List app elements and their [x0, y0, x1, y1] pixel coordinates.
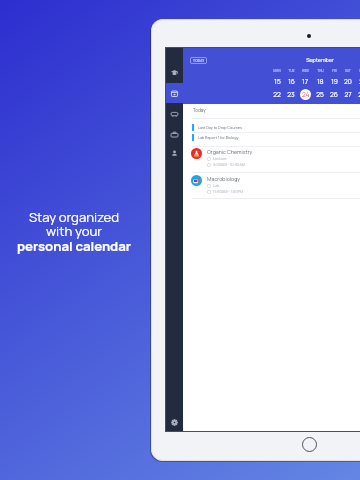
staticText: Macrobiology: [207, 175, 241, 182]
staticText: Lab Report 1 for Biology: [198, 135, 239, 140]
button[interactable]: Macrobiology: [166, 175, 360, 197]
button[interactable]: Messages: [166, 104, 183, 124]
button[interactable]: Courses: [166, 62, 183, 82]
staticText: 22: [273, 90, 281, 99]
staticText: WED: [302, 69, 309, 73]
staticText: SUN: [359, 69, 360, 73]
button[interactable]: Profile: [166, 143, 183, 163]
staticText: 17: [302, 77, 308, 86]
staticText: 27: [344, 90, 352, 99]
staticText: 20: [344, 77, 352, 86]
staticText: Organic Chemistry: [207, 148, 253, 155]
staticText: TUE: [288, 69, 295, 73]
button[interactable]: Organic Chemistry: [166, 148, 360, 170]
staticText: TODAY: [193, 58, 205, 63]
staticText: 25: [316, 90, 324, 99]
staticText: 11:00AM - 1:00PM: [213, 189, 244, 194]
button[interactable]: TODAY: [190, 57, 207, 64]
staticText: 19: [331, 77, 338, 86]
staticText: September: [306, 56, 334, 63]
staticText: 18: [317, 77, 324, 86]
staticText: Lecture: [213, 156, 227, 161]
staticText: FRI: [332, 69, 337, 73]
staticText: 16: [288, 77, 295, 86]
staticText: MON: [273, 69, 281, 73]
staticText: 15: [274, 77, 281, 86]
button[interactable]: 24: [300, 89, 311, 100]
staticText: Last Day to Drop Courses: [198, 125, 242, 130]
other: Home: [302, 437, 317, 452]
button[interactable]: Assignments: [166, 124, 183, 144]
staticText: THU: [317, 69, 324, 73]
staticText: Stay organized with your: [0, 208, 149, 240]
staticText: 28: [358, 90, 360, 99]
staticText: 9:00AM - 10:00AM: [213, 162, 245, 167]
button[interactable]: Last Day to Drop Courses: [166, 124, 360, 132]
staticText: 24: [302, 90, 310, 99]
staticText: Today: [193, 107, 206, 113]
staticText: Lab: [213, 183, 220, 188]
staticText: 23: [287, 90, 295, 99]
staticText: personal calendar: [0, 237, 149, 255]
staticText: 21: [359, 77, 360, 86]
staticText: SAT: [345, 69, 351, 73]
button[interactable]: Calendar: [166, 83, 183, 103]
staticText: 26: [330, 90, 338, 99]
button[interactable]: Lab Report 1 for Biology: [166, 134, 360, 142]
button[interactable]: Settings: [166, 412, 183, 432]
